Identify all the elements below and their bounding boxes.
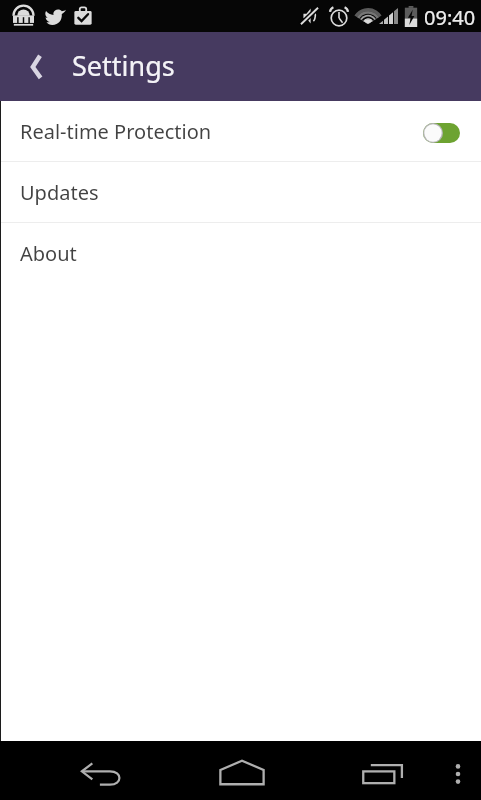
button[interactable]: More options (450, 764, 466, 784)
staticText: 09:40 (424, 4, 476, 31)
staticText: Real-time Protection (20, 118, 212, 145)
button[interactable]: Recent apps (362, 763, 404, 784)
staticText: Settings (72, 47, 175, 84)
button[interactable]: Home (219, 760, 265, 785)
button[interactable]: Back (22, 50, 52, 84)
button[interactable]: Real-time Protection (0, 101, 481, 161)
button[interactable]: Real-time Protection toggle (423, 123, 460, 143)
staticText: Updates (20, 179, 99, 206)
staticText: About (20, 240, 77, 267)
button[interactable]: Updates (0, 162, 481, 222)
button[interactable]: About (0, 223, 481, 283)
button[interactable]: Back (81, 763, 123, 786)
